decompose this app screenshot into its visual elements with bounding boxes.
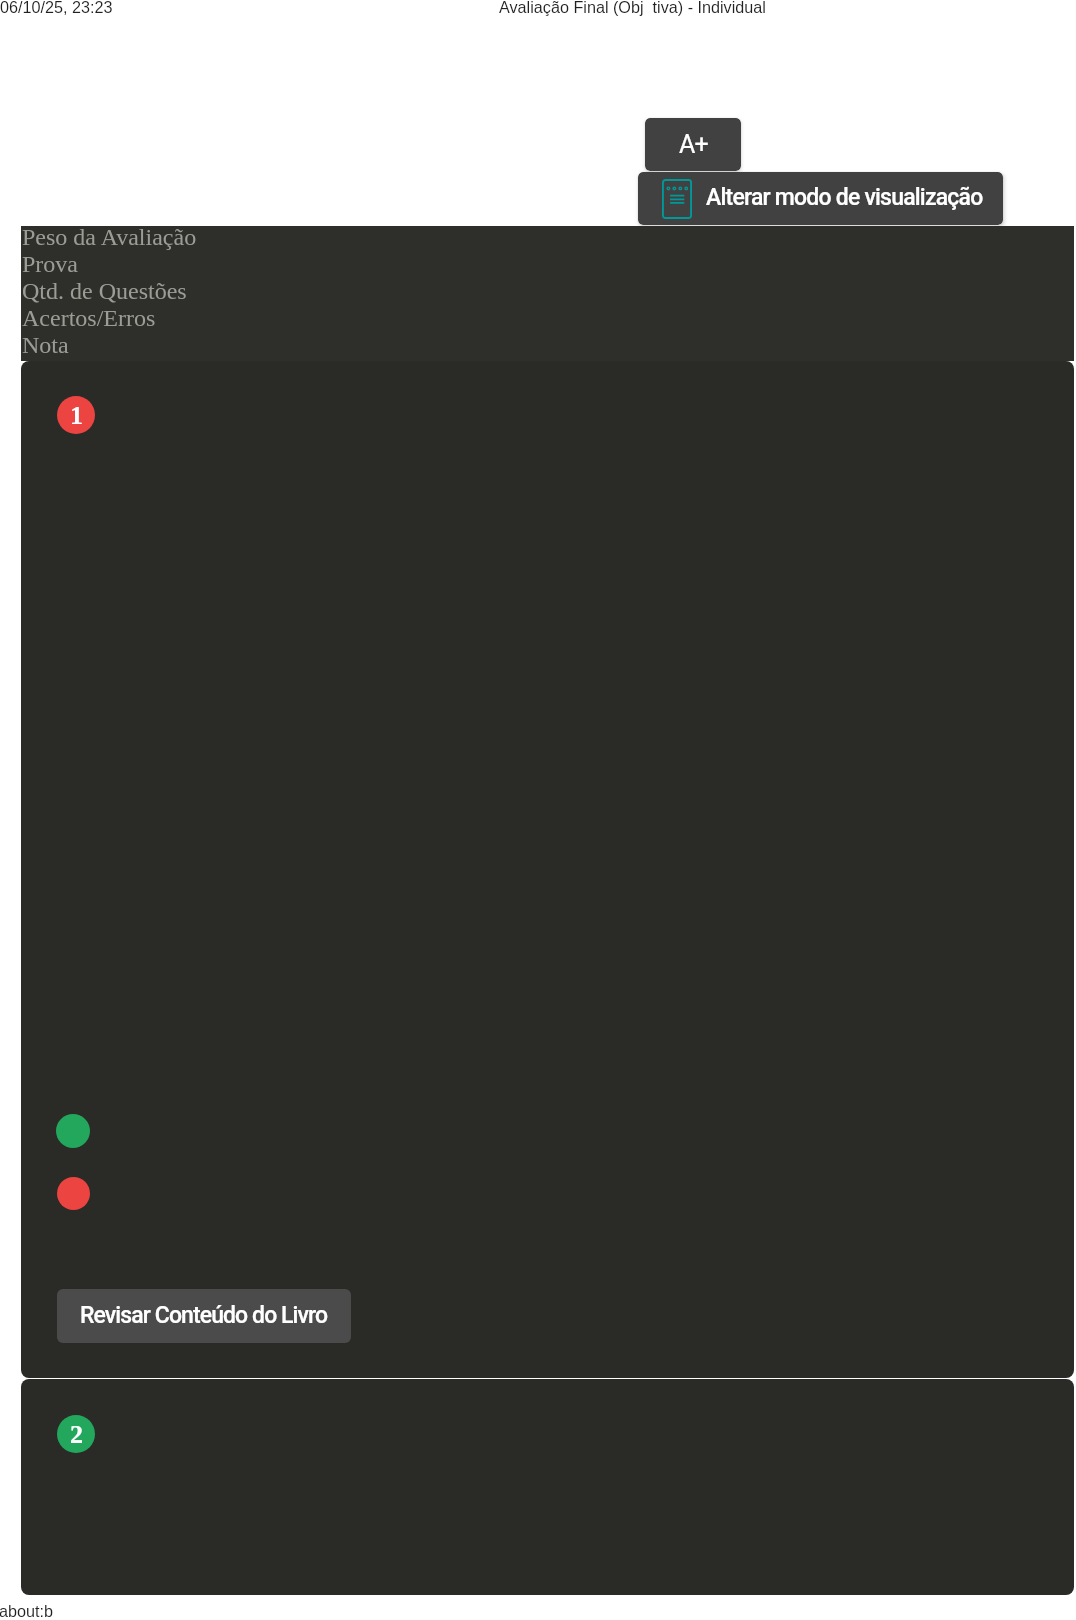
staticText: 1 [70, 401, 83, 430]
button[interactable]: 1 [21, 361, 1074, 1378]
button[interactable]: 1 [57, 396, 95, 434]
other: Alterar modo de visualização [662, 179, 692, 219]
button[interactable]: Alterar modo de visualização [638, 172, 1003, 225]
button[interactable]: Revisar Conteúdo do Livro [57, 1289, 351, 1343]
staticText: Avaliação Final (Obj tiva) - Individual [499, 0, 766, 16]
staticText: Revisar Conteúdo do Livro [80, 1302, 328, 1329]
button[interactable]: A+ [645, 118, 741, 171]
button[interactable]: 2 [57, 1415, 95, 1453]
staticText: 06/10/25, 23:23 [0, 0, 113, 16]
staticText: about:b [0, 1602, 54, 1620]
button[interactable]: 2 [21, 1379, 1074, 1595]
staticText: 2 [70, 1420, 83, 1449]
staticText: A+ [679, 130, 708, 159]
staticText: Acertos/Erros [22, 305, 156, 332]
staticText: Alterar modo de visualização [706, 184, 983, 211]
staticText: Nota [22, 332, 69, 359]
staticText: Qtd. de Questões [22, 278, 187, 305]
staticText: Prova [22, 251, 78, 278]
staticText: Peso da Avaliação [22, 224, 197, 251]
other: Resposta incorreta [57, 1177, 90, 1210]
other: Resposta correta [56, 1114, 90, 1148]
